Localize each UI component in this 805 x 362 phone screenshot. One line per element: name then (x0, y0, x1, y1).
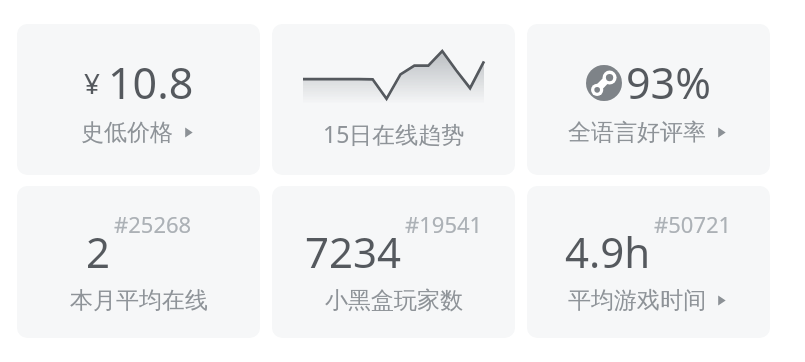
staticText: 15日在线趋势 (323, 118, 465, 149)
staticText: 平均游戏时间 (568, 286, 706, 315)
staticText: 小黑盒玩家数 (325, 286, 463, 315)
button[interactable]: 15日在线趋势 (272, 24, 515, 175)
button[interactable]: 史低价格 ¥10.8 (17, 24, 260, 175)
button[interactable]: 本月平均在线 2 #25268 (17, 186, 260, 338)
staticText: 全语言好评率 (568, 118, 706, 147)
staticText: 10.8 (108, 53, 194, 112)
staticText: 4.9h (565, 223, 651, 280)
other: Steam (586, 65, 622, 101)
button[interactable]: 全语言好评率 93% (527, 24, 770, 175)
staticText: 本月平均在线 (70, 286, 208, 315)
staticText: 93% (626, 53, 711, 112)
staticText: 7234 (305, 223, 402, 280)
button[interactable]: 小黑盒玩家数 7234 #19541 (272, 186, 515, 338)
staticText: 史低价格 (81, 118, 173, 147)
staticText: #19541 (405, 209, 483, 239)
staticText: #50721 (654, 209, 732, 239)
staticText: 2 (86, 223, 111, 280)
button[interactable]: 平均游戏时间 4.9h #50721 (527, 186, 770, 338)
staticText: #25268 (114, 209, 192, 239)
staticText: ¥ (84, 64, 101, 102)
